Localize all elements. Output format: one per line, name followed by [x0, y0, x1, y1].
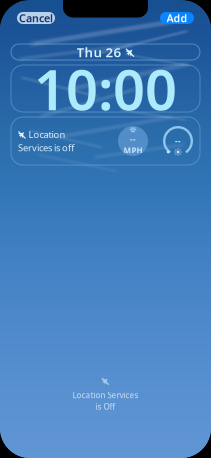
staticText: MPH [123, 145, 142, 156]
staticText: Cancel [19, 11, 53, 25]
staticText: is Off [95, 401, 115, 412]
button[interactable]: Add [160, 12, 194, 24]
staticText: Add [166, 11, 187, 25]
staticText: -- [175, 136, 181, 146]
staticText: 10:00 [34, 51, 177, 126]
staticText: Services is off [18, 141, 74, 154]
staticText: Thu 26 [76, 43, 121, 61]
staticText: -- [130, 134, 136, 144]
staticText: Location [28, 128, 65, 140]
button[interactable]: Cancel [17, 12, 55, 24]
staticText: Location Services [72, 390, 138, 400]
